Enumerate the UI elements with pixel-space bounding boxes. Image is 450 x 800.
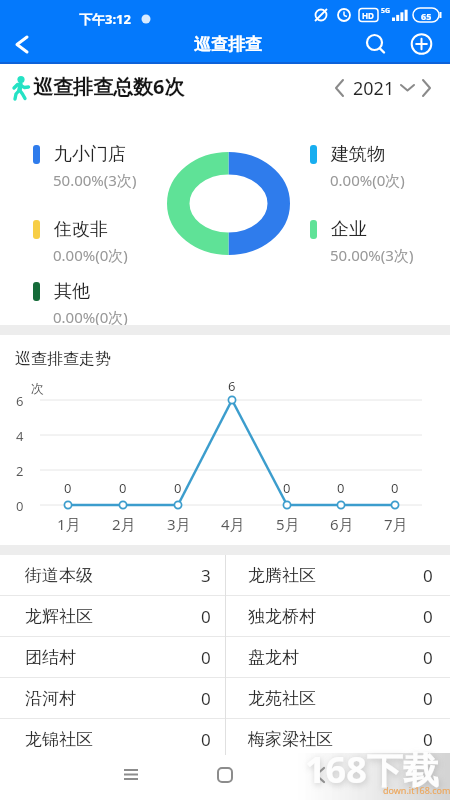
staticText: 50.00%(3次) bbox=[330, 245, 414, 265]
staticText: 巡查排查 bbox=[194, 34, 262, 55]
staticText: 3 bbox=[201, 564, 211, 587]
staticText: 0 bbox=[283, 479, 291, 497]
staticText: 龙锦社区 bbox=[25, 729, 93, 750]
button[interactable] bbox=[360, 30, 392, 62]
staticText: 团结村 bbox=[25, 647, 76, 668]
staticText: 0 bbox=[201, 605, 211, 628]
button[interactable]: 建筑物 bbox=[310, 142, 445, 194]
staticText: 6月 bbox=[330, 514, 354, 534]
staticText: 5月 bbox=[276, 514, 300, 534]
staticText: 0 bbox=[64, 479, 72, 497]
staticText: 沿河村 bbox=[25, 688, 76, 709]
staticText: 0 bbox=[423, 728, 433, 751]
staticText: 巡查排查总数6次 bbox=[33, 73, 185, 100]
staticText: 0 bbox=[423, 605, 433, 628]
staticText: 住改非 bbox=[54, 218, 108, 241]
staticText: 0 bbox=[201, 646, 211, 669]
staticText: 龙辉社区 bbox=[25, 606, 93, 627]
staticText: 50.00%(3次) bbox=[53, 170, 137, 190]
button[interactable]: 住改非 bbox=[33, 217, 168, 269]
staticText: 0 bbox=[423, 687, 433, 710]
staticText: 龙腾社区 bbox=[248, 565, 316, 586]
staticText: 0 bbox=[391, 479, 399, 497]
staticText: 0 bbox=[423, 564, 433, 587]
staticText: 0 bbox=[201, 687, 211, 710]
staticText: 0 bbox=[119, 479, 127, 497]
staticText: 0 bbox=[201, 728, 211, 751]
button[interactable] bbox=[113, 757, 149, 793]
button[interactable]: 2021 bbox=[325, 72, 445, 104]
button[interactable]: 龙腾社区 bbox=[225, 555, 450, 595]
button[interactable] bbox=[207, 757, 243, 793]
button[interactable]: 梅家梁社区 bbox=[225, 719, 450, 755]
staticText: 0.00%(0次) bbox=[330, 170, 405, 190]
staticText: 7月 bbox=[384, 514, 408, 534]
button[interactable]: 团结村 bbox=[0, 637, 225, 677]
staticText: 4 bbox=[16, 427, 24, 445]
staticText: down.it168.com bbox=[383, 784, 450, 796]
staticText: 2月 bbox=[112, 514, 136, 534]
staticText: 0 bbox=[16, 497, 24, 515]
staticText: 2 bbox=[16, 462, 24, 480]
staticText: HD bbox=[362, 10, 374, 21]
staticText: 2021 bbox=[353, 76, 395, 101]
button[interactable]: 龙辉社区 bbox=[0, 596, 225, 636]
staticText: 其他 bbox=[54, 280, 90, 303]
staticText: 企业 bbox=[331, 218, 367, 241]
staticText: 龙苑社区 bbox=[248, 688, 316, 709]
button[interactable]: 企业 bbox=[310, 217, 445, 269]
staticText: 0 bbox=[423, 646, 433, 669]
button[interactable] bbox=[302, 757, 338, 793]
staticText: 九小门店 bbox=[54, 143, 126, 166]
button[interactable]: 独龙桥村 bbox=[225, 596, 450, 636]
button[interactable]: 盘龙村 bbox=[225, 637, 450, 677]
staticText: 次 bbox=[31, 380, 44, 396]
staticText: 3月 bbox=[167, 514, 191, 534]
button[interactable] bbox=[406, 30, 438, 62]
button[interactable]: 龙锦社区 bbox=[0, 719, 225, 755]
staticText: 65 bbox=[421, 10, 432, 22]
button[interactable]: 九小门店 bbox=[33, 142, 168, 194]
staticText: 街道本级 bbox=[25, 565, 93, 586]
staticText: 0 bbox=[337, 479, 345, 497]
staticText: 建筑物 bbox=[331, 143, 385, 166]
staticText: 5G bbox=[381, 6, 391, 16]
button[interactable]: 沿河村 bbox=[0, 678, 225, 718]
button[interactable] bbox=[6, 31, 36, 61]
staticText: 梅家梁社区 bbox=[248, 729, 333, 750]
staticText: 168下载 bbox=[305, 745, 439, 794]
staticText: 巡查排查走势 bbox=[15, 349, 111, 369]
staticText: 4月 bbox=[221, 514, 245, 534]
staticText: 盘龙村 bbox=[248, 647, 299, 668]
button[interactable]: 其他 bbox=[33, 279, 168, 331]
button[interactable]: 龙苑社区 bbox=[225, 678, 450, 718]
staticText: 下午3:12 bbox=[79, 10, 131, 28]
staticText: 0 bbox=[174, 479, 182, 497]
staticText: 1月 bbox=[57, 514, 81, 534]
staticText: 独龙桥村 bbox=[248, 606, 316, 627]
staticText: 0.00%(0次) bbox=[53, 245, 128, 265]
staticText: 6 bbox=[228, 377, 236, 395]
button[interactable]: 街道本级 bbox=[0, 555, 225, 595]
staticText: 0.00%(0次) bbox=[53, 307, 128, 327]
staticText: 6 bbox=[16, 392, 24, 410]
